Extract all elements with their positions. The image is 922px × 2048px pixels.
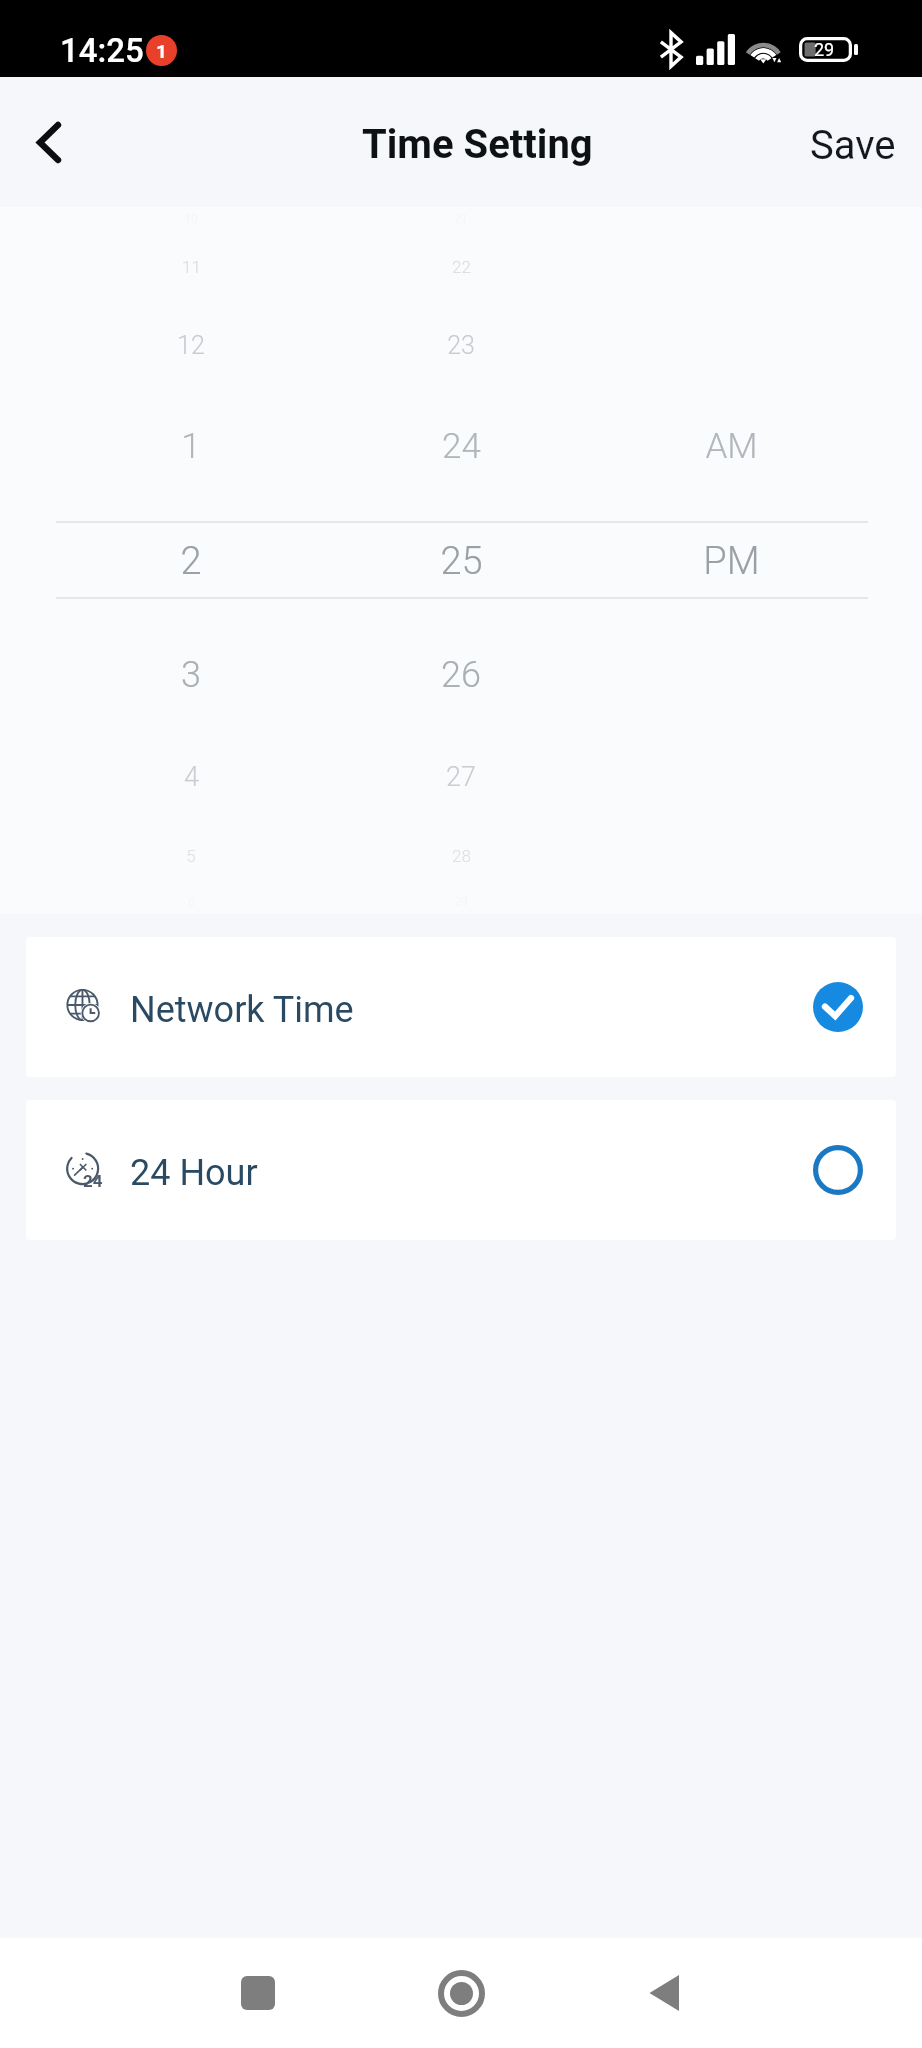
staticText: PM	[703, 539, 760, 584]
button[interactable]: AM or PM	[540, 207, 922, 914]
button[interactable]: Recents	[203, 1938, 313, 2048]
staticText: 1	[156, 40, 167, 62]
staticText: 2	[180, 539, 202, 584]
staticText: 3	[181, 654, 201, 696]
staticText: Network Time	[130, 989, 354, 1031]
staticText: 4	[184, 761, 199, 793]
staticText: 28	[452, 846, 471, 866]
staticText: Save	[810, 122, 896, 169]
staticText: 26	[441, 654, 481, 696]
staticText: AM	[705, 426, 758, 467]
staticText: 11	[182, 257, 201, 277]
button[interactable]: Save	[780, 101, 922, 184]
button[interactable]: Back	[608, 1938, 718, 2048]
button[interactable]: Back	[1, 94, 97, 190]
staticText: 1	[181, 426, 201, 467]
button[interactable]: Home	[406, 1938, 516, 2048]
staticText: Time Setting	[362, 121, 593, 168]
button[interactable]: Network Time	[26, 937, 896, 1077]
staticText: 25	[440, 539, 483, 584]
staticText: 5	[186, 846, 196, 866]
staticText: 29	[814, 39, 835, 60]
staticText: 22	[452, 257, 471, 277]
button[interactable]: 24	[26, 1100, 896, 1240]
button[interactable]: Hour	[0, 207, 382, 914]
staticText: 23	[447, 331, 475, 360]
staticText: 27	[446, 761, 476, 793]
staticText: 12	[177, 331, 205, 360]
button[interactable]: Minute	[382, 207, 540, 914]
staticText: 24	[442, 426, 481, 467]
staticText: 24	[83, 1171, 103, 1191]
staticText: 14:25	[60, 31, 144, 70]
staticText: 24 Hour	[130, 1152, 258, 1194]
